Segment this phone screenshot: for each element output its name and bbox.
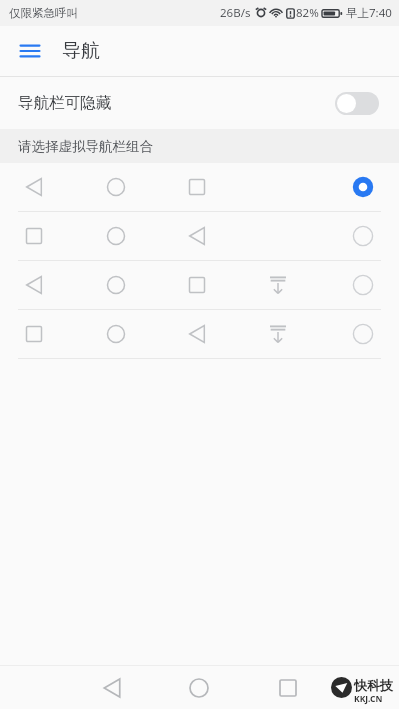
- staticText: 导航栏可隐藏: [18, 93, 111, 113]
- button[interactable]: 导航栏可隐藏: [0, 77, 399, 129]
- staticText: KKJ.CN: [354, 693, 383, 705]
- button[interactable]: Home: [178, 667, 220, 709]
- button[interactable]: Navigation bar layout option: [0, 212, 399, 260]
- button[interactable]: Navigation bar layout option: [0, 310, 399, 358]
- staticText: 导航: [62, 39, 100, 63]
- staticText: 早上7:40: [346, 5, 392, 21]
- button[interactable]: Navigation bar layout option: [0, 261, 399, 309]
- staticText: 快科技: [354, 677, 393, 693]
- button[interactable]: Recents: [267, 667, 309, 709]
- staticText: 仅限紧急呼叫: [9, 6, 78, 20]
- staticText: 26B/s: [220, 5, 251, 21]
- staticText: 请选择虚拟导航栏组合: [18, 138, 153, 155]
- button[interactable]: Menu: [10, 31, 50, 71]
- button[interactable]: Navigation bar layout option: [0, 163, 399, 211]
- button[interactable]: Back: [91, 667, 133, 709]
- staticText: 82%: [296, 5, 319, 21]
